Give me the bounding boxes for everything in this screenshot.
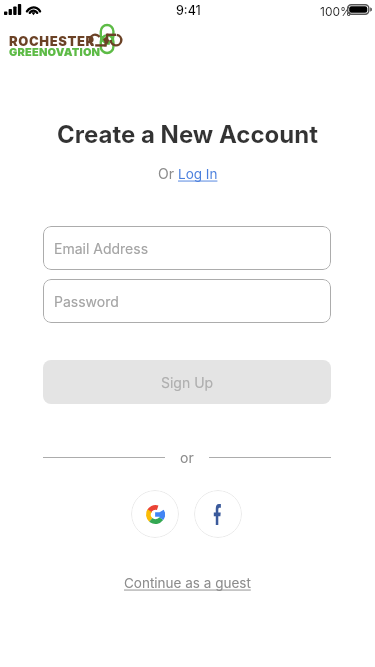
button[interactable]: Sign in with Google xyxy=(131,490,179,538)
staticText: or xyxy=(180,449,194,466)
staticText: Continue as a guest xyxy=(124,575,251,591)
staticText: GREENOVATION xyxy=(9,45,101,58)
staticText: ROCHESTER xyxy=(9,33,95,49)
button[interactable]: Password xyxy=(43,279,331,323)
staticText: Or xyxy=(158,165,178,182)
staticText: Password xyxy=(54,293,119,310)
button[interactable]: Log In xyxy=(178,166,218,182)
staticText: 100% xyxy=(320,4,352,19)
staticText: 9:41 xyxy=(176,3,201,18)
staticText: Create a New Account xyxy=(0,120,375,149)
staticText: Log In xyxy=(178,166,218,182)
button[interactable]: Email Address xyxy=(43,226,331,270)
button[interactable]: Continue as a guest xyxy=(124,575,251,591)
button[interactable]: Sign Up xyxy=(43,360,331,404)
staticText: Email Address xyxy=(54,240,149,257)
staticText: Sign Up xyxy=(161,374,214,391)
button[interactable]: Sign in with Facebook xyxy=(194,490,242,538)
